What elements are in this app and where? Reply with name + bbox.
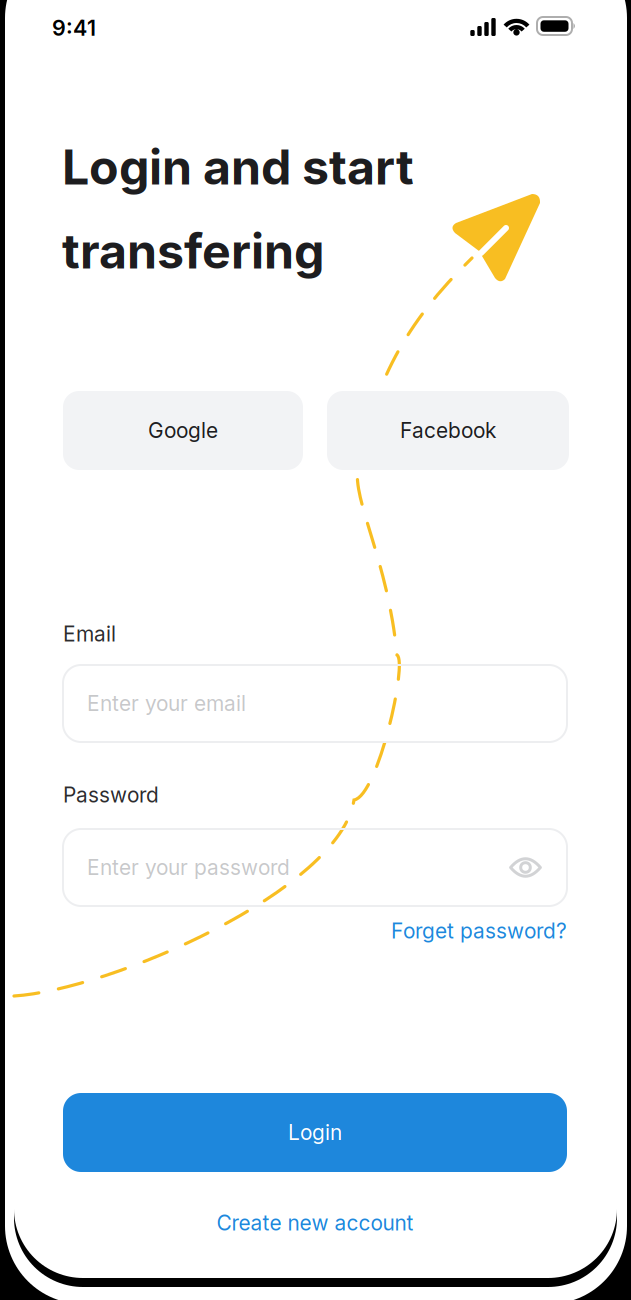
button[interactable]: Facebook — [327, 391, 569, 470]
staticText: Forget password? — [391, 918, 567, 944]
staticText: Create new account — [216, 1210, 413, 1236]
staticText: Enter your email — [87, 691, 246, 716]
staticText: Login — [288, 1120, 342, 1145]
button[interactable]: Forget password? — [337, 914, 567, 948]
button[interactable]: Show password — [509, 856, 542, 878]
staticText: Enter your password — [87, 855, 290, 880]
button[interactable]: Google — [63, 391, 303, 470]
staticText: transfering — [62, 222, 324, 280]
staticText: Login and start — [62, 138, 414, 196]
staticText: Password — [63, 782, 159, 808]
staticText: 9:41 — [52, 15, 96, 41]
staticText: Google — [148, 418, 218, 443]
button[interactable]: Login — [63, 1093, 567, 1172]
button[interactable]: Create new account — [165, 1204, 465, 1242]
staticText: Email — [63, 621, 116, 647]
staticText: Facebook — [400, 418, 496, 443]
